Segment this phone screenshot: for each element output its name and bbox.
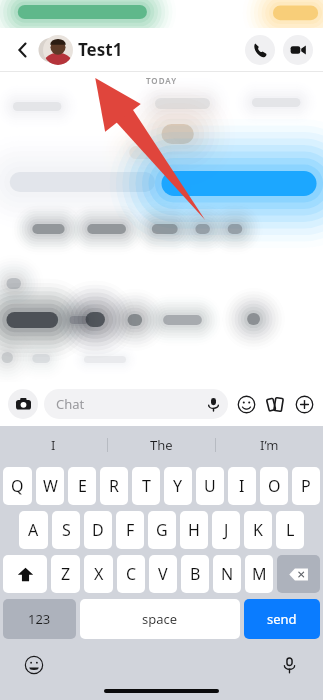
staticText: P	[301, 475, 311, 497]
staticText: F	[126, 519, 135, 541]
button[interactable]: Stickers	[235, 393, 257, 415]
button[interactable]: G	[148, 511, 176, 549]
staticText: R	[109, 475, 119, 497]
button[interactable]: R	[100, 467, 128, 505]
button[interactable]: H	[180, 511, 208, 549]
staticText: send	[267, 610, 297, 628]
button[interactable]: Back	[10, 37, 36, 63]
staticText: V	[158, 563, 168, 585]
button[interactable]: N	[213, 555, 241, 593]
button[interactable]: C	[117, 555, 145, 593]
button[interactable]: Backspace	[277, 555, 320, 593]
button[interactable]: Shift	[3, 555, 47, 593]
button[interactable]: Emoji keyboard	[22, 653, 46, 677]
button[interactable]: S	[52, 511, 80, 549]
button[interactable]: Chat	[44, 389, 228, 419]
button[interactable]: A	[19, 511, 48, 549]
button[interactable]: V	[149, 555, 177, 593]
staticText: I	[51, 436, 56, 454]
button[interactable]: K	[244, 511, 272, 549]
button[interactable]: send	[244, 599, 320, 639]
staticText: B	[190, 563, 201, 585]
button[interactable]: B	[181, 555, 209, 593]
staticText: C	[126, 563, 137, 585]
staticText: I	[239, 475, 245, 497]
staticText: E	[78, 475, 87, 497]
button[interactable]: F	[116, 511, 144, 549]
button[interactable]: Profile	[40, 35, 70, 65]
staticText: Chat	[56, 395, 85, 413]
button[interactable]: I	[228, 467, 256, 505]
staticText: Test1	[78, 38, 123, 61]
staticText: S	[62, 519, 71, 541]
button[interactable]: Y	[164, 467, 192, 505]
button[interactable]: U	[196, 467, 224, 505]
staticText: M	[252, 563, 267, 585]
staticText: G	[156, 519, 168, 541]
button[interactable]: O	[260, 467, 288, 505]
staticText: Z	[61, 563, 71, 585]
button[interactable]: I	[0, 426, 107, 464]
staticText: space	[142, 610, 178, 628]
button[interactable]: E	[68, 467, 96, 505]
staticText: X	[94, 563, 104, 585]
staticText: TODAY	[0, 75, 323, 86]
button[interactable]: D	[84, 511, 112, 549]
staticText: I’m	[260, 436, 279, 454]
button[interactable]: X	[84, 555, 113, 593]
staticText: A	[28, 519, 39, 541]
button[interactable]: The	[108, 426, 215, 464]
staticText: J	[224, 519, 229, 541]
staticText: L	[286, 519, 295, 541]
button[interactable]: J	[212, 511, 240, 549]
staticText: Y	[173, 475, 183, 497]
staticText: K	[253, 519, 263, 541]
button[interactable]: Call	[245, 35, 275, 65]
button[interactable]: L	[276, 511, 304, 549]
button[interactable]: Camera	[8, 389, 38, 419]
staticText: Q	[11, 475, 24, 497]
staticText: D	[92, 519, 104, 541]
staticText: N	[221, 563, 234, 585]
button[interactable]: Voice input	[277, 653, 301, 677]
button[interactable]: Z	[51, 555, 80, 593]
staticText: U	[204, 475, 216, 497]
button[interactable]: W	[36, 467, 64, 505]
button[interactable]: P	[292, 467, 320, 505]
staticText: The	[150, 436, 173, 454]
button[interactable]: space	[80, 599, 240, 639]
staticText: H	[188, 519, 200, 541]
staticText: O	[268, 475, 281, 497]
button[interactable]: M	[245, 555, 273, 593]
staticText: W	[43, 475, 58, 497]
button[interactable]: 123	[3, 599, 76, 639]
button[interactable]: T	[132, 467, 160, 505]
button[interactable]: Video call	[283, 35, 313, 65]
button[interactable]: I’m	[216, 426, 323, 464]
button[interactable]: GIF	[264, 393, 286, 415]
staticText: T	[142, 475, 151, 497]
staticText: 123	[28, 610, 51, 628]
button[interactable]: Q	[3, 467, 32, 505]
button[interactable]: More options	[293, 393, 315, 415]
